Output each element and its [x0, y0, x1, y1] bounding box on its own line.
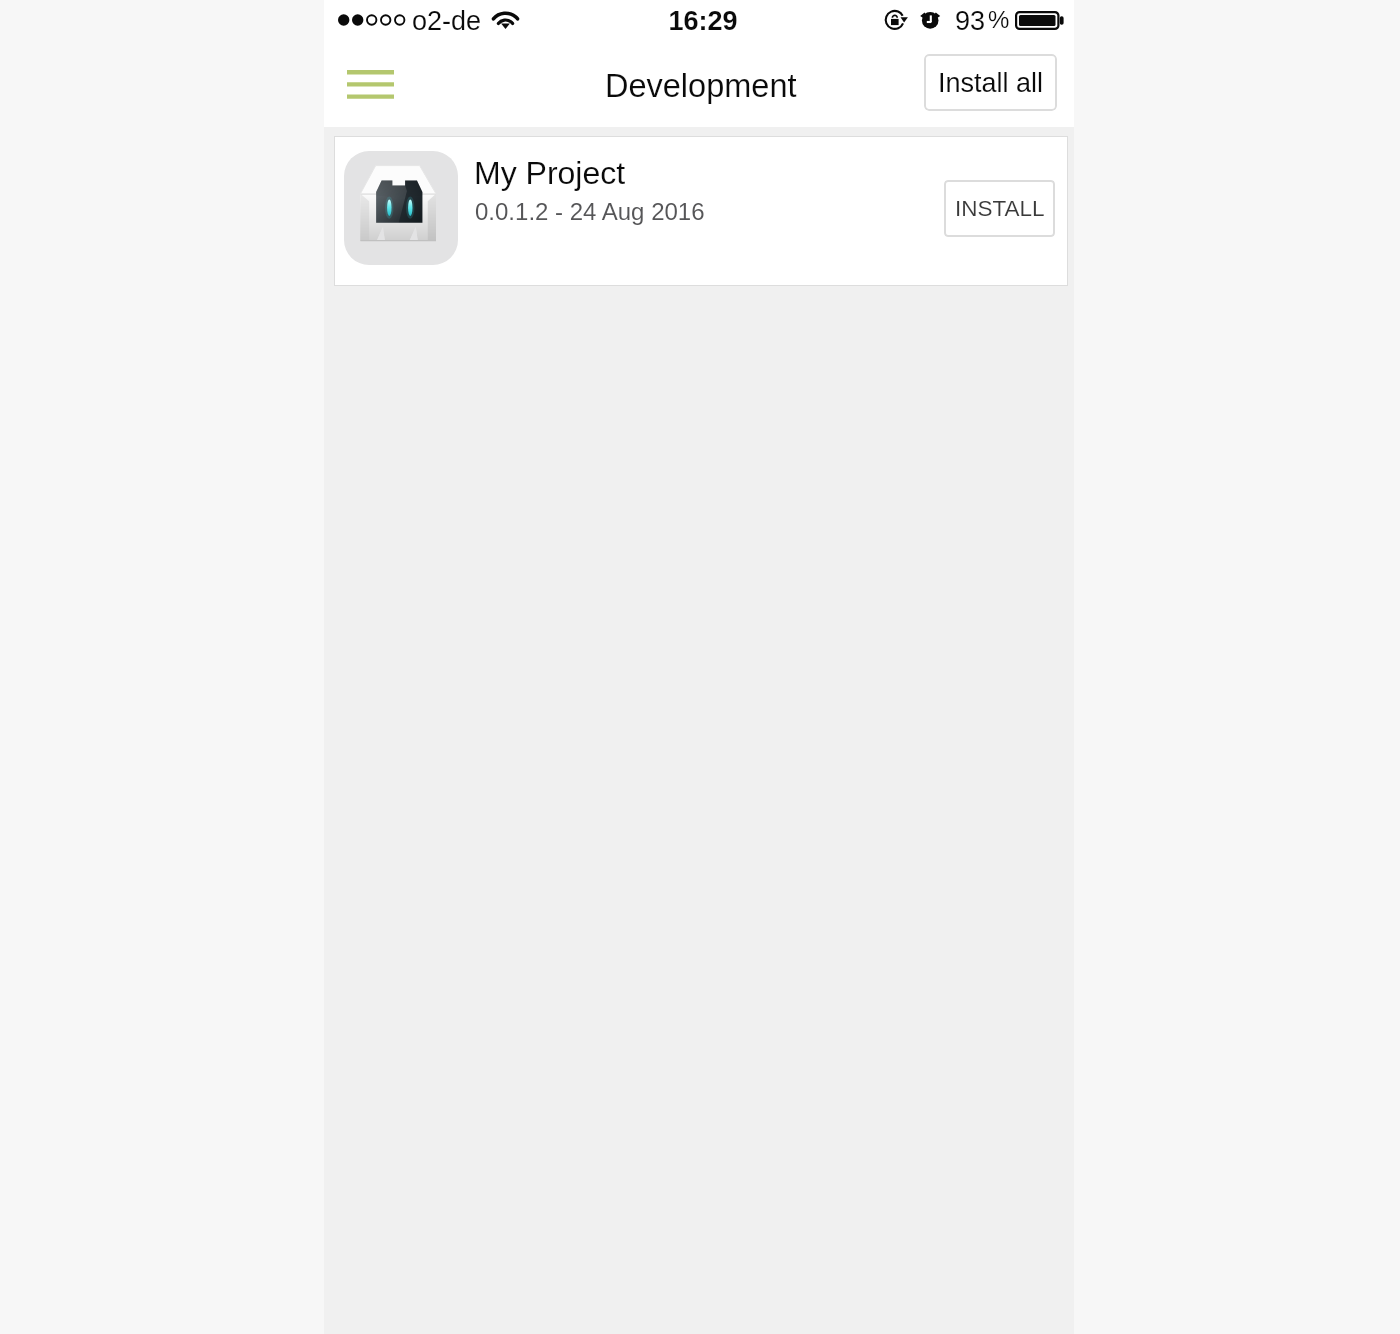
- button[interactable]: INSTALL: [944, 180, 1055, 237]
- button[interactable]: My Project: [334, 136, 1068, 286]
- staticText: 93: [955, 6, 986, 36]
- staticText: Development: [605, 68, 797, 104]
- button[interactable]: Open navigation menu: [332, 53, 408, 115]
- staticText: %: [988, 6, 1010, 33]
- staticText: o2-de: [412, 6, 482, 36]
- staticText: My Project: [474, 155, 626, 191]
- staticText: 0.0.1.2 - 24 Aug 2016: [475, 198, 705, 225]
- staticText: 16:29: [623, 6, 783, 36]
- staticText: Install all: [938, 68, 1044, 98]
- staticText: INSTALL: [955, 196, 1045, 221]
- button[interactable]: Install all: [924, 54, 1057, 111]
